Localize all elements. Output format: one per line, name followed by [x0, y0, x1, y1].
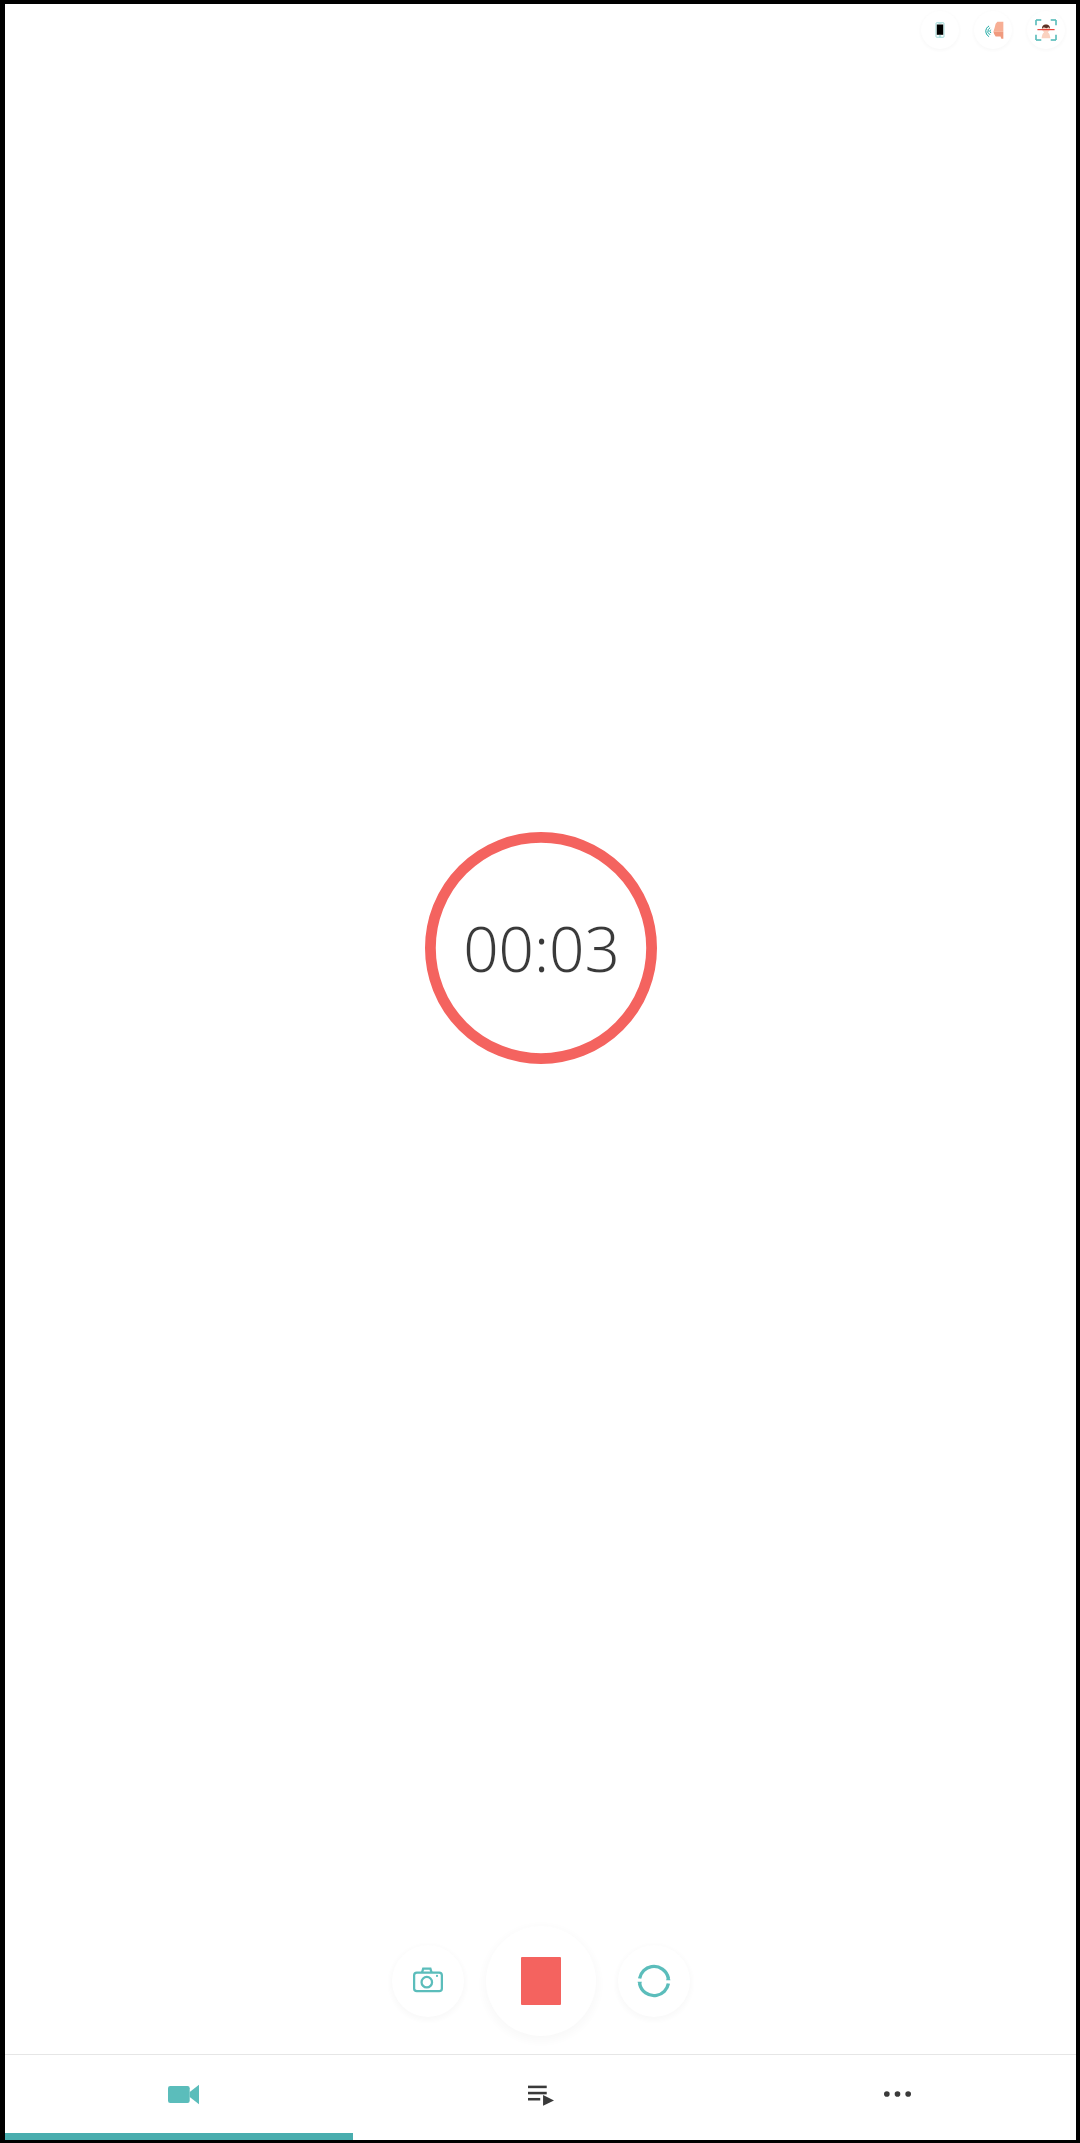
button[interactable]: Switch camera — [618, 1945, 690, 2017]
button[interactable]: Record — [5, 2055, 362, 2133]
button[interactable]: Take photo — [392, 1945, 464, 2017]
button[interactable]: Library — [362, 2055, 719, 2133]
button[interactable]: Face detection — [1027, 11, 1065, 49]
button[interactable]: Stop recording — [486, 1926, 596, 2036]
button[interactable]: Voice control — [974, 11, 1012, 49]
staticText: 00:03 — [463, 906, 620, 990]
button[interactable]: Connect phone — [921, 11, 959, 49]
button[interactable]: More options — [719, 2055, 1076, 2133]
